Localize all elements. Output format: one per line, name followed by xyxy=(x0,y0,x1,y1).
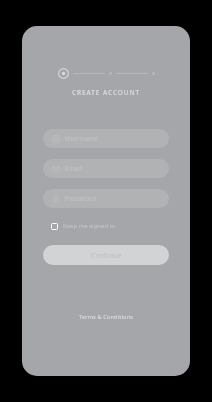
button[interactable]: Username xyxy=(43,129,169,148)
button[interactable]: Continue xyxy=(43,245,169,265)
staticText: Username xyxy=(65,134,99,143)
staticText: Terms & Conditions xyxy=(79,313,134,320)
staticText: Keep me signed in xyxy=(63,222,115,230)
staticText: Continue xyxy=(91,251,122,260)
staticText: Email xyxy=(65,164,83,173)
staticText: Password xyxy=(65,194,96,203)
button[interactable]: Terms & Conditions xyxy=(71,309,142,324)
staticText: CREATE ACCOUNT xyxy=(72,88,140,97)
button[interactable]: Keep me signed in xyxy=(43,220,169,232)
